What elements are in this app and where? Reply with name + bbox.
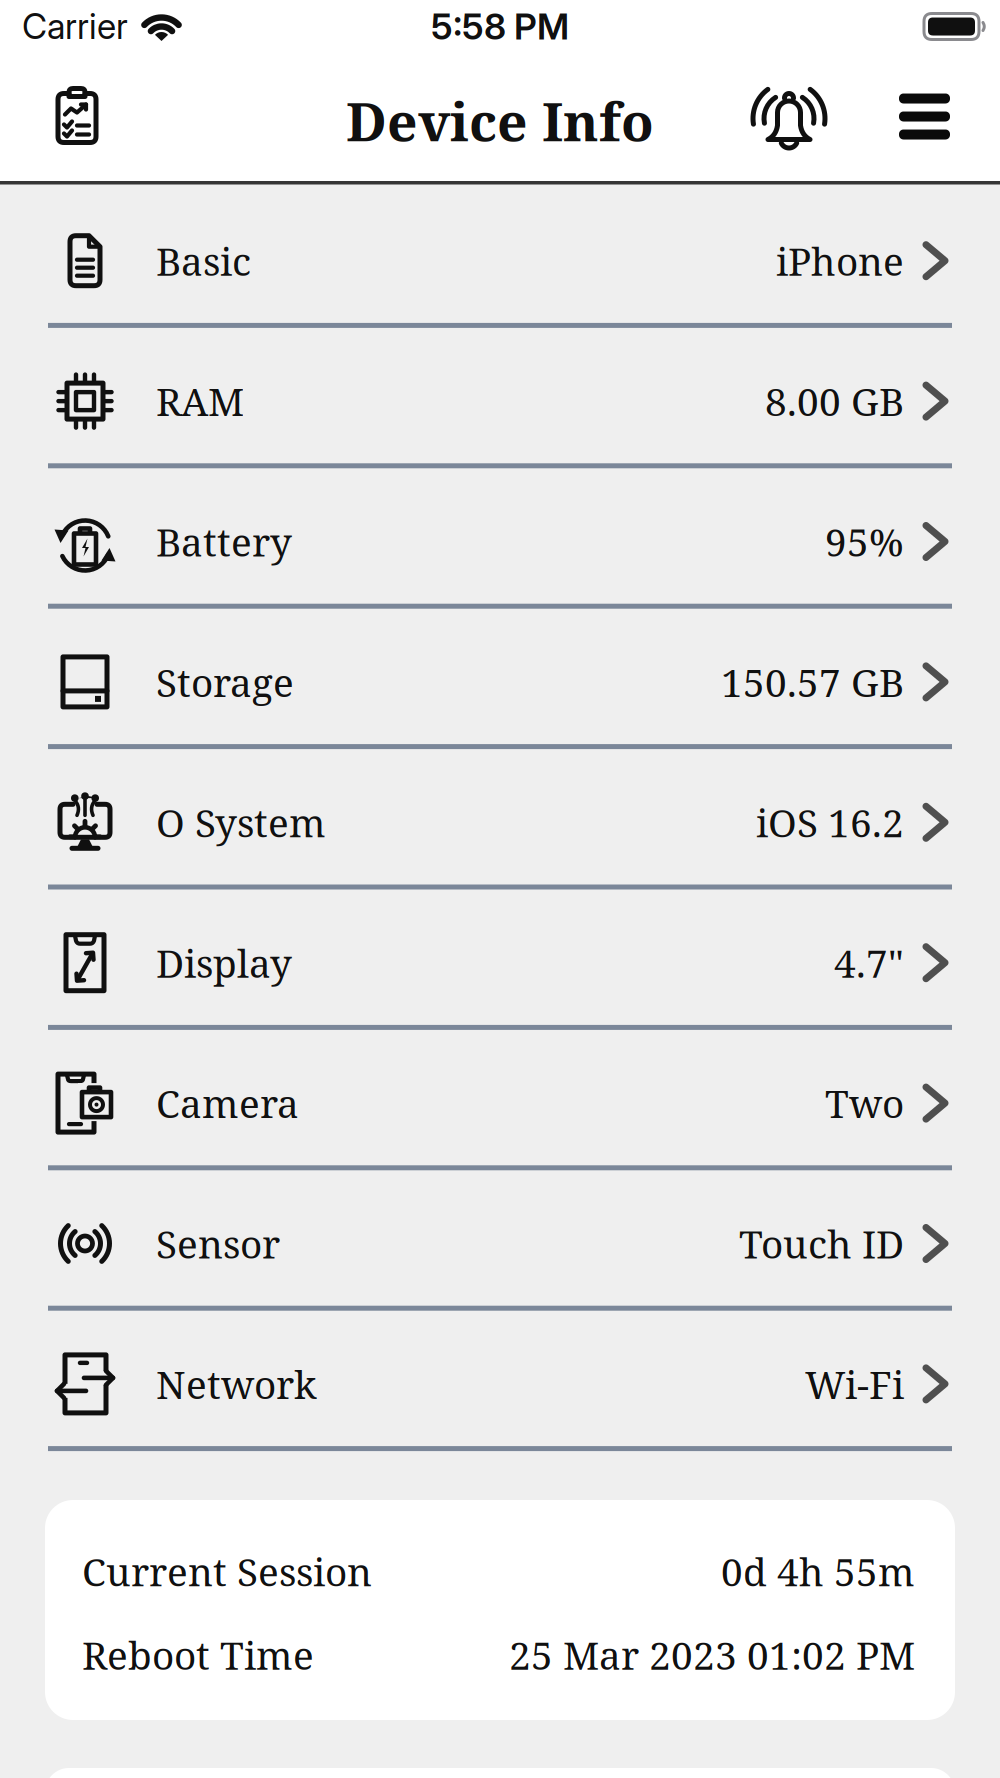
staticText: Storage: [156, 656, 294, 708]
button[interactable]: Notifications: [752, 86, 828, 154]
staticText: 150.57 GB: [721, 656, 904, 708]
staticText: Camera: [156, 1077, 299, 1129]
staticText: O System: [156, 796, 326, 849]
button[interactable]: Storage: [0, 609, 1000, 744]
staticText: 25 Mar 2023 01:02 PM: [509, 1628, 915, 1681]
button[interactable]: Camera: [0, 1030, 1000, 1165]
staticText: Wi-Fi: [805, 1358, 904, 1410]
staticText: Network: [156, 1358, 317, 1410]
button[interactable]: Basic: [0, 187, 1000, 323]
staticText: Battery: [156, 515, 292, 568]
button[interactable]: RAM: [0, 328, 1000, 463]
staticText: Display: [156, 936, 292, 989]
staticText: Reboot Time: [82, 1628, 314, 1681]
staticText: Two: [825, 1077, 904, 1129]
staticText: Current Session: [82, 1545, 372, 1597]
staticText: Carrier: [22, 5, 128, 47]
staticText: Device Info: [346, 84, 654, 157]
staticText: Touch ID: [739, 1217, 904, 1270]
staticText: 5:58 PM: [431, 5, 569, 48]
staticText: iOS 16.2: [756, 796, 904, 849]
staticText: 0d 4h 55m: [721, 1545, 915, 1597]
button[interactable]: Battery: [0, 468, 1000, 604]
staticText: 8.00 GB: [765, 375, 904, 427]
button[interactable]: Sensor: [0, 1170, 1000, 1306]
staticText: RAM: [156, 375, 244, 427]
button[interactable]: O System: [0, 749, 1000, 884]
staticText: iPhone: [776, 234, 904, 287]
button[interactable]: Network: [0, 1311, 1000, 1446]
button[interactable]: Reports: [0, 92, 99, 148]
staticText: 95%: [825, 515, 904, 568]
button[interactable]: Menu: [828, 97, 1000, 143]
staticText: Sensor: [156, 1217, 280, 1270]
button[interactable]: Display: [0, 889, 1000, 1025]
staticText: Basic: [156, 234, 251, 287]
staticText: 4.7": [834, 936, 904, 989]
